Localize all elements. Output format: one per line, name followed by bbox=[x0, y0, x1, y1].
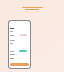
button[interactable] bbox=[10, 63, 29, 66]
